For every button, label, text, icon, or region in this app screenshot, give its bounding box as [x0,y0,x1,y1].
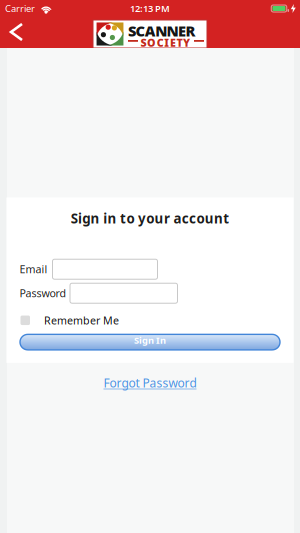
button[interactable]: Sign In [20,334,280,350]
button[interactable]: Remember Me [6,313,293,327]
staticText: Remember Me [44,313,119,327]
button[interactable] [0,20,32,48]
staticText: Password [19,286,66,300]
staticText: SCANNER [128,21,195,40]
staticText: Sign in to your account [71,209,229,227]
staticText: Forgot Password [103,375,196,391]
staticText: 12:13 PM [130,2,170,15]
staticText: SOCIETY [140,35,190,50]
staticText: Sign In [134,334,166,346]
staticText: Carrier [5,2,35,15]
button[interactable]: Forgot Password [103,363,196,391]
button[interactable] [70,283,177,303]
staticText: Email [19,262,47,276]
button[interactable] [52,259,157,279]
